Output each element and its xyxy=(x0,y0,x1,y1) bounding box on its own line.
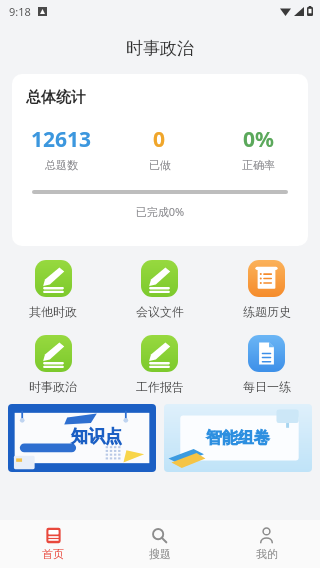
staticText: 9:18 xyxy=(9,4,31,19)
button[interactable]: 搜题 xyxy=(106,520,213,568)
button[interactable]: 知识点 xyxy=(8,404,156,472)
button[interactable]: 我的 xyxy=(213,520,320,568)
staticText: 每日一练 xyxy=(243,379,291,394)
button[interactable]: 每日一练 xyxy=(213,331,320,398)
staticText: 知识点 xyxy=(71,426,122,447)
staticText: 会议文件 xyxy=(136,304,184,319)
button[interactable]: 时事政治 xyxy=(0,331,106,398)
staticText: 正确率 xyxy=(242,158,275,172)
staticText: 我的 xyxy=(256,547,278,561)
button[interactable]: 其他时政 xyxy=(0,256,106,323)
staticText: 智能组卷 xyxy=(206,428,270,448)
staticText: 总题数 xyxy=(45,158,78,172)
button[interactable]: 练题历史 xyxy=(213,256,320,323)
staticText: 12613 xyxy=(31,125,92,154)
button[interactable]: 总体统计 xyxy=(12,74,308,246)
staticText: 练题历史 xyxy=(243,304,291,319)
button[interactable]: 智能组卷 xyxy=(164,404,312,472)
staticText: 时事政治 xyxy=(29,379,77,394)
staticText: 工作报告 xyxy=(136,379,184,394)
staticText: 首页 xyxy=(42,547,64,561)
staticText: 时事政治 xyxy=(126,38,194,59)
staticText: 已做 xyxy=(149,158,171,172)
button[interactable]: 首页 xyxy=(0,520,106,568)
button[interactable]: 工作报告 xyxy=(106,331,213,398)
staticText: 总体统计 xyxy=(26,88,86,107)
staticText: 已完成0% xyxy=(12,204,308,219)
staticText: 其他时政 xyxy=(29,304,77,319)
button[interactable]: 会议文件 xyxy=(106,256,213,323)
staticText: 0 xyxy=(153,125,166,154)
staticText: 0% xyxy=(243,125,274,154)
staticText: 搜题 xyxy=(149,547,171,561)
